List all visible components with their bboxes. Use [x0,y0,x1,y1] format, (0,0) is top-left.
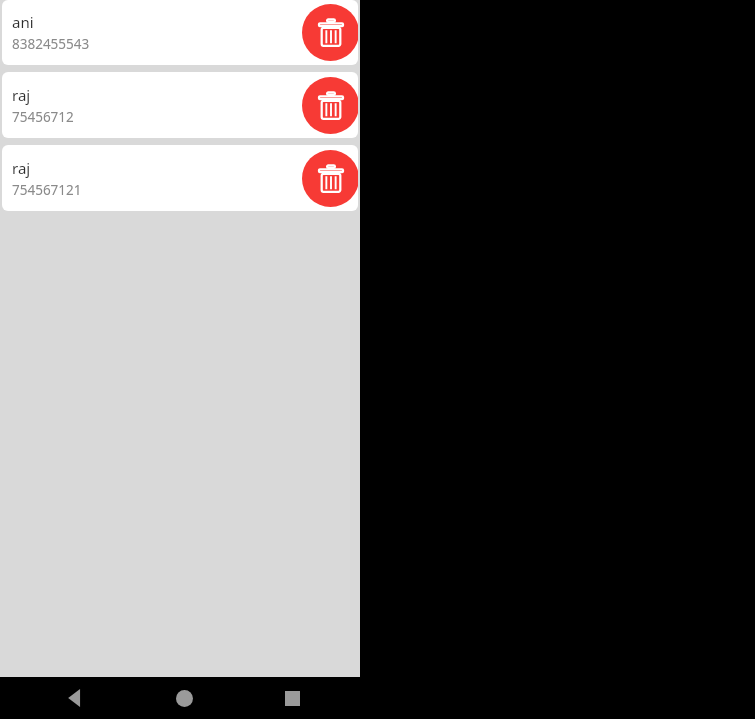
button[interactable]: Home [161,677,207,719]
staticText: 8382455543 [12,35,90,53]
button[interactable]: ani [2,0,358,65]
staticText: raj [12,158,31,178]
button[interactable]: raj [2,72,358,138]
staticText: ani [12,12,34,32]
button[interactable]: Back [52,677,98,719]
button[interactable]: Delete [302,77,358,134]
staticText: 754567121 [12,181,82,199]
staticText: raj [12,85,31,105]
button[interactable]: Delete [302,4,358,61]
staticText: 75456712 [12,108,74,126]
button[interactable]: Recent apps [269,677,315,719]
button[interactable]: raj [2,145,358,211]
button[interactable]: Delete [302,150,358,207]
